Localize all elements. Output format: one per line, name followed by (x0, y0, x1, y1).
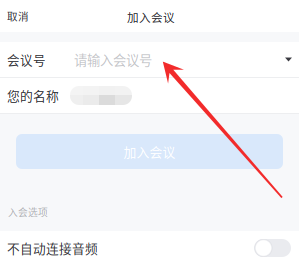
button[interactable]: 取消 (0, 1, 39, 31)
staticText: 您的名称 (7, 86, 59, 105)
staticText: 加入会议 (127, 9, 175, 25)
staticText: 会议号 (7, 50, 46, 68)
staticText: 入会选项 (8, 205, 48, 219)
staticText: 请输入会议号 (74, 50, 152, 69)
button[interactable]: 您的名称 (0, 78, 299, 113)
staticText: 取消 (7, 8, 29, 24)
button[interactable]: 加入会议 (0, 134, 299, 169)
staticText: 不自动连接音频 (7, 239, 98, 257)
staticText: 加入会议 (123, 142, 175, 161)
button[interactable]: 不自动连接音频 (0, 231, 299, 265)
button[interactable]: 会议号 (0, 42, 299, 77)
